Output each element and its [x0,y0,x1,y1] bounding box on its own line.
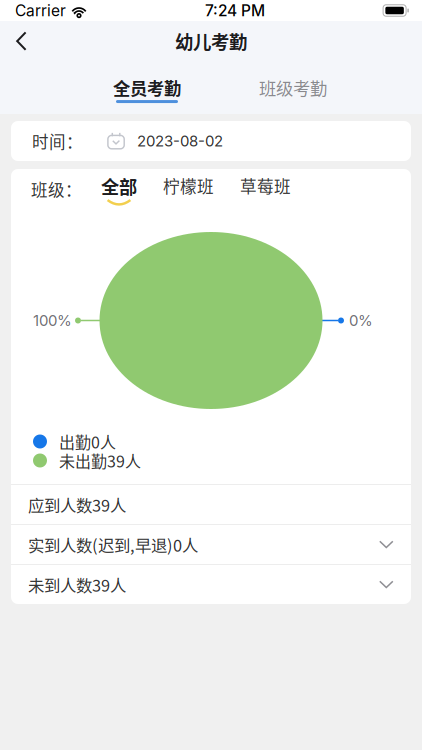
staticText: 班级考勤 [259,75,327,100]
staticText: 2023-08-02 [137,132,223,150]
button[interactable]: 未到人数39人 [11,565,411,604]
staticText: 幼儿考勤 [175,28,247,54]
staticText: 7:24 PM [205,1,265,20]
staticText: 实到人数(迟到,早退)0人 [28,533,198,556]
button[interactable]: 全员考勤 [99,75,195,103]
button[interactable]: 实到人数(迟到,早退)0人 [11,525,411,564]
staticText: 100% [33,311,72,329]
button[interactable]: 应到人数39人 [11,485,411,524]
staticText: 草莓班 [240,173,291,197]
staticText: 全部 [101,173,137,199]
button[interactable]: 全部 [101,173,137,205]
staticText: 柠檬班 [163,173,214,197]
staticText: 应到人数39人 [28,493,126,516]
staticText: 未到人数39人 [28,573,126,596]
button[interactable]: 草莓班 [240,173,291,204]
button[interactable]: 2023-08-02 [107,132,223,150]
staticText: 全员考勤 [113,75,181,100]
staticText: 0% [349,311,373,329]
button[interactable]: Back [0,20,45,61]
staticText: 班级： [31,177,82,201]
staticText: 未出勤39人 [59,449,141,472]
staticText: 出勤0人 [59,430,116,453]
staticText: Carrier [15,1,66,20]
button[interactable]: 柠檬班 [163,173,214,204]
button[interactable]: 班级考勤 [245,75,341,103]
staticText: 时间： [32,129,83,153]
